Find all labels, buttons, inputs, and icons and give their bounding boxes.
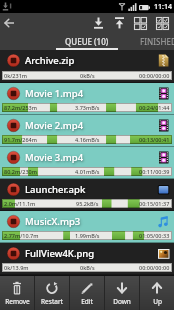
staticText: Launcher.apk	[25, 183, 86, 196]
button[interactable]: Movie 1.mp4	[0, 83, 174, 115]
staticText: Remove	[5, 297, 30, 306]
button[interactable]: Movie 3.mp4	[0, 147, 174, 179]
staticText: 3.73mB/s	[75, 104, 100, 111]
button[interactable]: MusicX.mp3	[0, 211, 174, 243]
staticText: 00:24/01:44	[139, 104, 170, 111]
button[interactable]: Up	[140, 276, 174, 310]
button[interactable]	[0, 13, 19, 33]
staticText: 00:13/00:41	[139, 136, 170, 143]
staticText: Down	[113, 297, 131, 306]
staticText: 00:11/00:39	[139, 168, 170, 175]
button[interactable]: Archive.zip	[0, 50, 174, 83]
button[interactable]	[151, 13, 174, 33]
button[interactable]: QUEUE (10)	[0, 33, 174, 50]
button[interactable]	[88, 13, 109, 33]
staticText: Up	[153, 297, 162, 306]
staticText: 0k/231m	[4, 72, 27, 79]
button[interactable]: Launcher.apk	[0, 179, 174, 211]
staticText: 00:00/00:00	[139, 72, 170, 79]
button[interactable]: Movie 2.mp4	[0, 115, 174, 147]
staticText: 2.77m/10.7m	[4, 232, 39, 239]
button[interactable]: Down	[105, 276, 139, 310]
button[interactable]	[130, 13, 151, 33]
staticText: 00:15/01:37	[139, 200, 170, 207]
staticText: 0kB/s	[80, 72, 95, 79]
staticText: 1.99mB/s	[75, 232, 100, 239]
staticText: 87.2m/253m	[4, 104, 37, 111]
staticText: Movie 3.mp4	[25, 151, 84, 164]
staticText: Restart	[41, 297, 63, 306]
staticText: Movie 1.mp4	[25, 87, 84, 100]
staticText: 95.2kB/s	[76, 200, 99, 207]
staticText: MusicX.mp3	[25, 215, 81, 228]
staticText: 01:05/00:33	[139, 232, 170, 239]
staticText: FullView4K.png	[25, 247, 95, 260]
staticText: 4.16mB/s	[75, 136, 100, 143]
staticText: 91.7m/264m	[4, 136, 37, 143]
staticText: QUEUE (10)	[65, 36, 109, 47]
staticText: 80.2m/230m	[4, 168, 37, 175]
staticText: Archive.zip	[25, 54, 75, 67]
button[interactable]: Edit	[70, 276, 104, 310]
button[interactable]	[109, 13, 130, 33]
staticText: 11:14	[154, 2, 172, 12]
button[interactable]: Restart	[35, 276, 69, 310]
staticText: Edit	[81, 297, 93, 306]
staticText: 00:00/00:00	[139, 264, 170, 271]
staticText: 4.01mB/s	[75, 168, 100, 175]
button[interactable]: FINISHED	[140, 36, 174, 47]
button[interactable]: FullView4K.png	[0, 243, 174, 275]
button[interactable]: Remove	[0, 276, 34, 310]
staticText: 0kB/s	[80, 264, 95, 271]
staticText: 2.0m/11.1m	[4, 200, 36, 207]
staticText: 0k/13.9m	[4, 264, 29, 271]
staticText: Movie 2.mp4	[25, 119, 84, 132]
